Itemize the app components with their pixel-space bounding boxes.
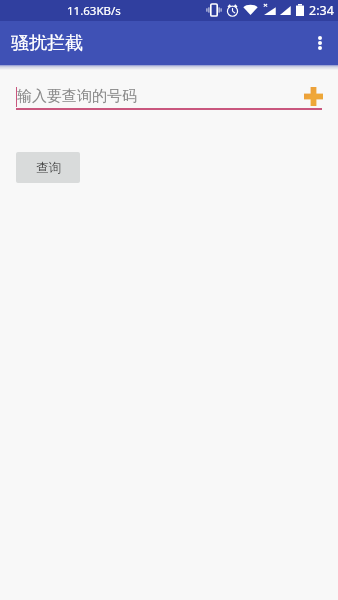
button[interactable]: More options bbox=[302, 21, 338, 65]
staticText: 骚扰拦截 bbox=[11, 32, 83, 55]
button[interactable]: 查询 bbox=[16, 152, 80, 183]
button[interactable]: Add number bbox=[302, 85, 325, 108]
staticText: 11.63KB/s bbox=[67, 3, 121, 19]
staticText: 输入要查询的号码 bbox=[17, 87, 137, 106]
staticText: 查询 bbox=[36, 160, 61, 176]
staticText: 2:34 bbox=[309, 2, 334, 19]
button[interactable]: 输入要查询的号码 bbox=[16, 82, 296, 110]
